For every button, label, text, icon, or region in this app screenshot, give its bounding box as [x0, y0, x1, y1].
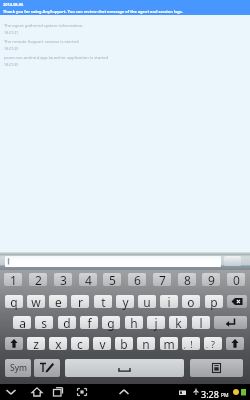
button[interactable]: ? [204, 337, 222, 350]
button[interactable]: e [49, 295, 67, 308]
button[interactable]: u [138, 295, 156, 308]
button[interactable]: Send [224, 256, 241, 266]
staticText: b [120, 336, 128, 352]
staticText: 8 [184, 272, 191, 288]
button[interactable]: z [27, 337, 45, 350]
button[interactable]: a [13, 316, 31, 329]
staticText: ! [190, 338, 193, 350]
staticText: e [55, 294, 62, 310]
staticText: h [130, 315, 138, 331]
button[interactable]: t [94, 295, 112, 308]
button[interactable]: 3 [54, 273, 72, 286]
staticText: t [101, 294, 106, 310]
button[interactable]: y [116, 295, 134, 308]
staticText: m [163, 336, 175, 352]
staticText: s [41, 315, 47, 331]
button[interactable]: k [169, 316, 187, 329]
staticText: v [99, 336, 106, 352]
staticText: , [184, 341, 186, 351]
button[interactable]: Recent apps [51, 385, 65, 399]
button[interactable]: 7 [153, 273, 171, 286]
button[interactable]: Home [30, 385, 44, 399]
button[interactable]: Sym [5, 359, 31, 377]
staticText: j [154, 315, 158, 331]
button[interactable]: h [125, 316, 143, 329]
button[interactable]: Message input [5, 256, 221, 267]
staticText: q [10, 294, 18, 310]
button[interactable]: w [27, 295, 45, 308]
staticText: Thank you for using AnySupport. You can … [3, 9, 183, 14]
staticText: n [142, 336, 150, 352]
button[interactable]: Shift [226, 337, 244, 350]
staticText: k [175, 315, 182, 331]
button[interactable]: Enter [214, 316, 247, 329]
staticText: f [87, 315, 92, 331]
staticText: r [78, 294, 83, 310]
button[interactable]: Space [65, 359, 184, 377]
button[interactable]: Shift [5, 337, 23, 350]
button[interactable]: c [71, 337, 89, 350]
staticText: 3 [60, 272, 67, 288]
button[interactable]: j [147, 316, 165, 329]
button[interactable]: n [137, 337, 155, 350]
button[interactable]: Handwriting [34, 359, 60, 377]
button[interactable]: 8 [178, 273, 196, 286]
staticText: ? [211, 338, 215, 350]
button[interactable]: s [35, 316, 53, 329]
staticText: w [31, 294, 41, 310]
staticText: 0 [233, 272, 240, 288]
button[interactable]: 1 [4, 273, 22, 286]
staticText: u [143, 294, 151, 310]
button[interactable]: ! [182, 337, 200, 350]
button[interactable]: f [80, 316, 98, 329]
staticText: y [122, 294, 129, 310]
button[interactable]: 6 [128, 273, 146, 286]
staticText: 6 [134, 272, 141, 288]
button[interactable]: v [93, 337, 111, 350]
button[interactable]: 4 [79, 273, 97, 286]
staticText: 1 [10, 272, 17, 288]
staticText: Sym [10, 362, 27, 374]
staticText: z [33, 336, 39, 352]
button[interactable]: x [49, 337, 67, 350]
staticText: 7 [159, 272, 166, 288]
staticText: x [55, 336, 62, 352]
staticText: 5 [109, 272, 116, 288]
button[interactable]: r [71, 295, 89, 308]
staticText: g [107, 315, 115, 331]
staticText: 2014-08-06 [3, 2, 24, 7]
staticText: 2 [35, 272, 42, 288]
staticText: . [206, 341, 208, 351]
staticText: o [187, 294, 195, 310]
staticText: a [19, 315, 26, 331]
button[interactable]: Backspace [227, 295, 247, 308]
button[interactable]: d [58, 316, 76, 329]
button[interactable]: g [102, 316, 120, 329]
button[interactable]: Expand [117, 385, 131, 399]
button[interactable]: o [182, 295, 200, 308]
button[interactable]: 9 [202, 273, 220, 286]
staticText: The remote Support session is started [4, 39, 79, 45]
button[interactable]: Emoji [190, 359, 243, 377]
staticText: pcom.sec.android.app.launcher applicatio… [4, 55, 109, 61]
button[interactable]: 2 [29, 273, 47, 286]
staticText: PM [221, 392, 229, 399]
button[interactable]: p [205, 295, 223, 308]
button[interactable]: b [115, 337, 133, 350]
staticText: 18:27:35 [4, 62, 19, 67]
staticText: 9 [208, 272, 215, 288]
staticText: l [199, 315, 203, 331]
button[interactable]: i [160, 295, 178, 308]
staticText: The agent gathered system information. [4, 23, 84, 29]
staticText: 4 [85, 272, 92, 288]
button[interactable]: 5 [103, 273, 121, 286]
button[interactable]: m [160, 337, 178, 350]
staticText: p [210, 294, 218, 310]
button[interactable]: Hide keyboard [4, 385, 18, 399]
button[interactable]: q [5, 295, 23, 308]
button[interactable]: l [192, 316, 210, 329]
staticText: 18:27:25 [4, 46, 19, 51]
button[interactable]: 0 [227, 273, 245, 286]
staticText: d [63, 315, 71, 331]
button[interactable]: Screenshot [75, 385, 89, 399]
